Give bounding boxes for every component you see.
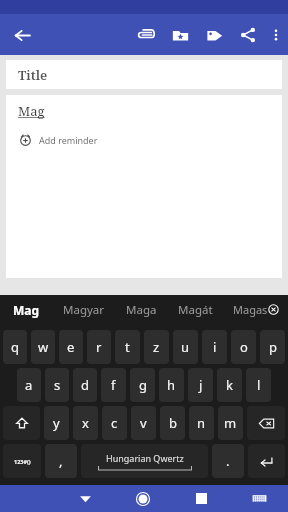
button[interactable]: n [189,406,214,440]
staticText: g [139,376,147,394]
button[interactable]: i [202,330,227,364]
button[interactable]: Magyar [53,295,115,324]
button[interactable]: Maga [115,295,168,324]
button[interactable]: Add reminder [19,133,98,146]
staticText: 123#() [14,458,31,465]
button[interactable]: y [44,406,69,440]
button[interactable]: o [231,330,256,364]
button[interactable]: Hungarian Qwertz [81,444,208,478]
button[interactable]: , [45,444,77,478]
button[interactable]: x [73,406,98,440]
button[interactable]: m [218,406,243,440]
button[interactable]: Attach [129,17,163,53]
button[interactable]: . [212,444,244,478]
staticText: Maga [126,302,157,318]
button[interactable]: Mag [6,95,282,278]
button[interactable]: Label [197,17,231,53]
staticText: . [226,452,230,470]
button[interactable]: j [188,368,213,402]
button[interactable]: Home [114,485,172,512]
staticText: w [38,338,49,356]
staticText: Magát [178,302,213,318]
button[interactable]: p [260,330,285,364]
staticText: f [111,376,116,394]
button[interactable]: Magát [168,295,223,324]
staticText: s [54,376,61,394]
staticText: c [111,414,118,432]
button[interactable]: s [45,368,69,402]
button[interactable]: Recents [172,485,230,512]
button[interactable]: Switch keyboard [230,485,288,512]
staticText: Add reminder [39,134,98,146]
staticText: Title [18,66,48,84]
button[interactable]: q [3,330,27,364]
staticText: Hungarian Qwertz [106,452,184,464]
button[interactable]: Back [7,20,37,50]
button[interactable]: v [131,406,156,440]
button[interactable]: Mag [0,295,53,324]
button[interactable]: Symbols [3,444,41,478]
button[interactable]: z [144,330,169,364]
staticText: k [226,376,233,394]
button[interactable]: t [115,330,140,364]
staticText: l [257,376,261,394]
staticText: q [11,338,19,356]
button[interactable]: Backspace [247,406,285,440]
button[interactable]: l [246,368,271,402]
staticText: j [199,376,203,394]
button[interactable]: Enter [248,444,285,478]
button[interactable]: g [130,368,155,402]
staticText: v [140,414,147,432]
staticText: m [224,414,237,432]
staticText: Mag [13,302,40,318]
button[interactable]: a [17,368,41,402]
staticText: Magas [233,302,268,317]
button[interactable]: Shift [3,406,40,440]
staticText: a [25,376,33,394]
button[interactable]: More options [265,17,287,53]
button[interactable]: u [173,330,198,364]
staticText: o [240,338,248,356]
button[interactable]: e [59,330,83,364]
button[interactable]: r [87,330,111,364]
other: Close suggestions [268,304,279,315]
staticText: n [197,414,206,432]
button[interactable]: Hide keyboard [57,485,114,512]
button[interactable]: c [102,406,127,440]
staticText: Magyar [63,302,105,318]
staticText: x [82,414,89,432]
button[interactable]: Title [6,60,282,89]
button[interactable]: k [217,368,242,402]
staticText: i [213,338,217,356]
button[interactable]: f [101,368,126,402]
staticText: Mag [18,102,45,120]
staticText: h [167,376,176,394]
staticText: p [269,338,277,356]
staticText: d [81,376,89,394]
button[interactable]: w [31,330,55,364]
staticText: z [153,338,160,356]
staticText: y [53,414,60,432]
button[interactable]: Magas [223,295,288,324]
button[interactable]: Move to folder [163,17,197,53]
staticText: r [96,338,102,356]
button[interactable]: b [160,406,185,440]
staticText: , [59,452,63,470]
button[interactable]: h [159,368,184,402]
button[interactable]: Share [231,17,265,53]
button[interactable]: d [73,368,97,402]
staticText: e [67,338,75,356]
staticText: b [169,414,177,432]
staticText: u [181,338,190,356]
staticText: t [125,338,130,356]
